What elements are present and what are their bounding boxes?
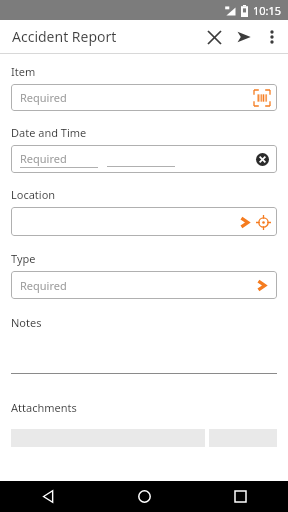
button[interactable]: Required xyxy=(11,145,277,173)
button[interactable]: Choose location xyxy=(235,213,253,231)
button[interactable]: Send xyxy=(229,22,259,52)
staticText: Item xyxy=(11,64,36,79)
staticText: Required xyxy=(20,151,67,166)
button[interactable]: Recent apps xyxy=(192,481,288,512)
button[interactable]: Clear date and time xyxy=(253,150,272,169)
staticText: Location xyxy=(11,187,56,202)
staticText: Attachments xyxy=(11,400,77,415)
button[interactable]: Required xyxy=(11,84,277,111)
staticText: Required xyxy=(20,278,67,293)
button[interactable]: Choose location xyxy=(11,207,277,236)
staticText: Type xyxy=(11,251,36,266)
staticText: Notes xyxy=(11,315,42,330)
button[interactable]: Home xyxy=(96,481,192,512)
button[interactable]: More options xyxy=(259,24,285,50)
button[interactable] xyxy=(11,352,277,374)
staticText: Accident Report xyxy=(12,27,117,46)
staticText: Date and Time xyxy=(11,125,87,140)
button[interactable]: Close xyxy=(199,22,229,52)
staticText: Required xyxy=(20,90,67,105)
staticText: 10:15 xyxy=(253,3,282,18)
button[interactable]: Scan barcode xyxy=(252,88,272,108)
button[interactable]: Choose type xyxy=(251,275,271,295)
button[interactable]: Back xyxy=(0,481,96,512)
button[interactable]: Use current location xyxy=(253,212,273,232)
button[interactable]: Required xyxy=(11,271,277,299)
